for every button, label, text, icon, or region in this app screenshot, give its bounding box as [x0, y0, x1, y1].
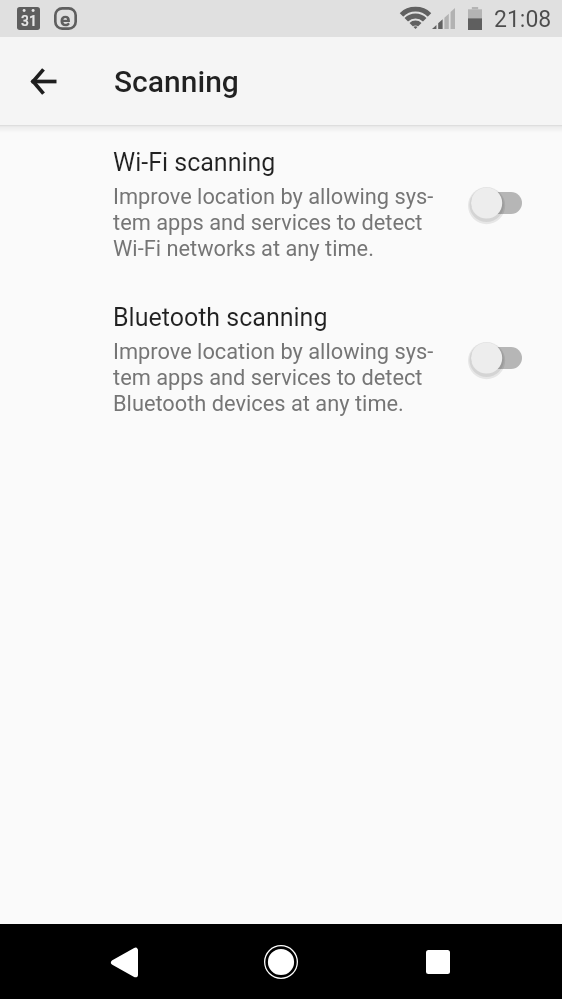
button[interactable]: Bluetooth scanning toggle: [467, 336, 525, 380]
button[interactable]: Wi-Fi scanning: [0, 148, 562, 266]
button[interactable]: Navigate up: [10, 47, 78, 115]
staticText: Improve location by allowing sys- tem ap…: [113, 184, 434, 262]
button[interactable]: Recent apps: [410, 934, 466, 990]
button[interactable]: Wi-Fi scanning toggle: [467, 181, 525, 225]
staticText: 31: [21, 13, 37, 29]
staticText: Improve location by allowing sys- tem ap…: [113, 339, 434, 417]
staticText: e: [60, 8, 71, 30]
staticText: 21:08: [494, 6, 552, 33]
button[interactable]: Home: [253, 934, 309, 990]
staticText: Bluetooth scanning: [113, 303, 328, 332]
staticText: Scanning: [114, 64, 239, 99]
button[interactable]: Bluetooth scanning: [0, 303, 562, 421]
button[interactable]: Back: [97, 934, 153, 990]
staticText: Wi-Fi scanning: [113, 148, 276, 177]
